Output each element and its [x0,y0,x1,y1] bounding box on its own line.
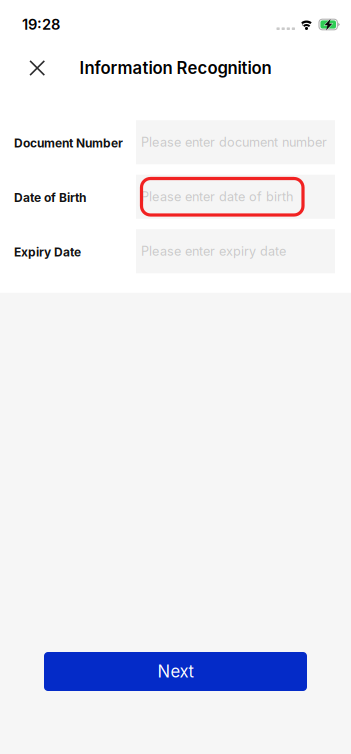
button[interactable]: Next [44,652,307,691]
button[interactable]: Please enter expiry date [136,229,335,273]
staticText: Please enter document number [141,135,327,150]
staticText: Date of Birth [14,190,86,205]
staticText: 19:28 [22,16,60,33]
button[interactable]: Please enter document number [136,120,335,164]
button[interactable]: Close [0,50,63,86]
staticText: Document Number [14,136,123,150]
staticText: Next [157,661,193,682]
button[interactable]: Please enter date of birth [136,175,335,219]
staticText: Please enter expiry date [141,244,286,259]
staticText: Expiry Date [14,245,81,259]
staticText: Please enter date of birth [141,189,293,204]
staticText: Information Recognition [79,58,271,78]
